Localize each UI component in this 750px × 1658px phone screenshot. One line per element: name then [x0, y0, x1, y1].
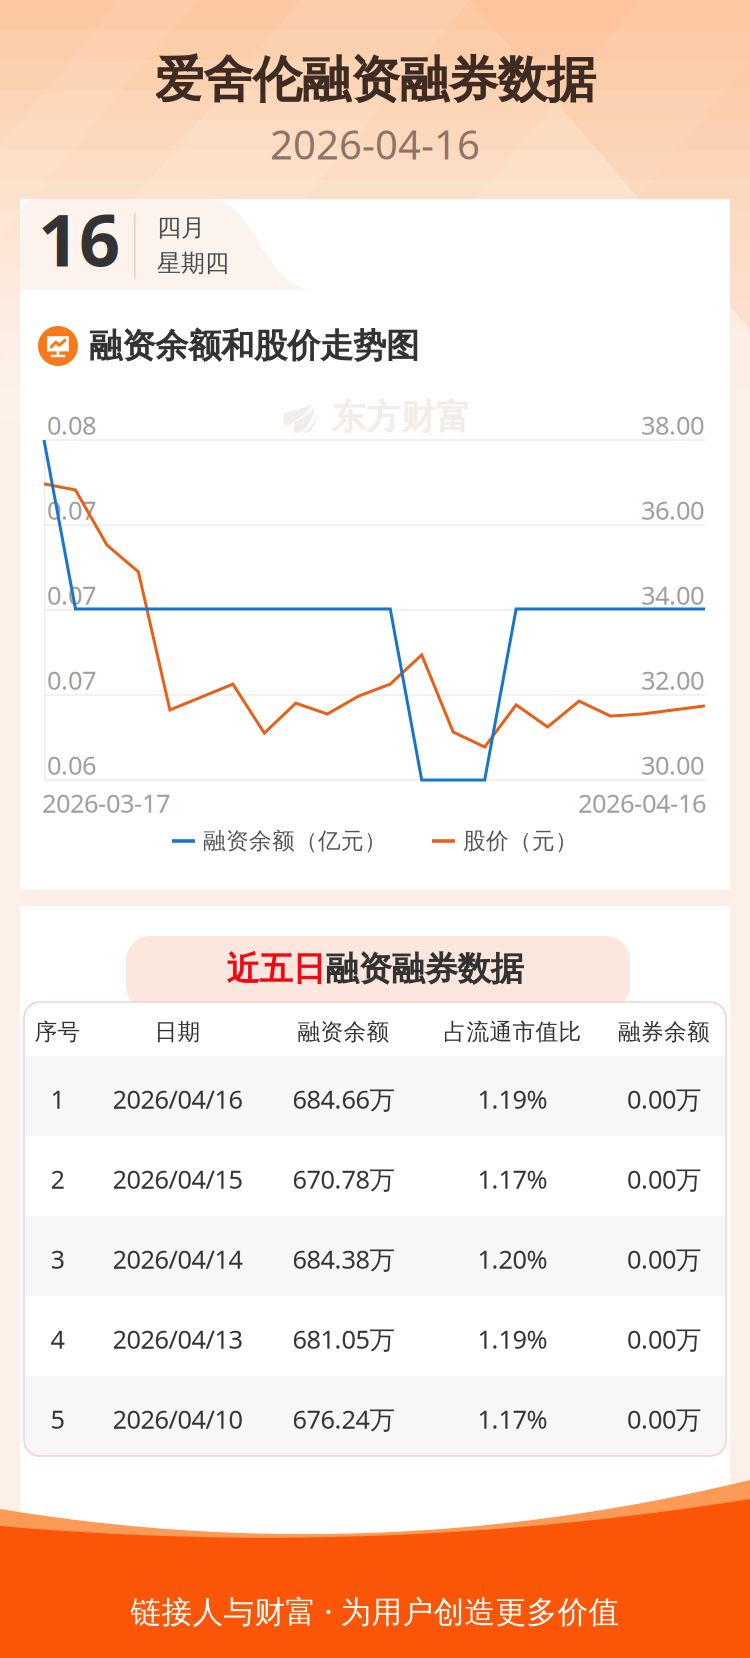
- staticText: 0.00万: [627, 1162, 701, 1196]
- staticText: 684.38万: [292, 1242, 394, 1276]
- staticText: 684.66万: [292, 1082, 394, 1116]
- staticText: 日期: [154, 1018, 200, 1046]
- staticText: 1.19%: [477, 1322, 547, 1356]
- staticText: 2: [50, 1162, 64, 1196]
- staticText: 16: [38, 191, 120, 286]
- staticText: 32.00: [641, 663, 704, 697]
- staticText: 4: [50, 1322, 64, 1356]
- staticText: 38.00: [641, 408, 704, 442]
- staticText: 2026/04/10: [112, 1402, 242, 1436]
- staticText: 2026/04/13: [112, 1322, 242, 1356]
- staticText: 1.20%: [477, 1242, 547, 1276]
- staticText: 链接人与财富 · 为用户创造更多价值: [130, 1591, 619, 1631]
- staticText: 0.00万: [627, 1082, 701, 1116]
- staticText: 0.08: [47, 408, 96, 442]
- staticText: 星期四: [157, 248, 229, 278]
- staticText: 融资余额和股价走势图: [89, 325, 419, 366]
- staticText: 占流通市值比: [443, 1018, 581, 1046]
- staticText: 0.00万: [627, 1402, 701, 1436]
- staticText: 1.19%: [477, 1082, 547, 1116]
- staticText: 东方财富: [331, 396, 471, 439]
- staticText: 0.07: [47, 493, 96, 527]
- staticText: 681.05万: [292, 1322, 394, 1356]
- staticText: 30.00: [641, 748, 704, 782]
- staticText: 1.17%: [477, 1402, 547, 1436]
- staticText: 676.24万: [292, 1402, 394, 1436]
- staticText: 0.07: [47, 663, 96, 697]
- staticText: 股价（元）: [463, 827, 578, 855]
- staticText: 1.17%: [477, 1162, 547, 1196]
- staticText: 36.00: [641, 493, 704, 527]
- staticText: 2026/04/14: [112, 1242, 242, 1276]
- staticText: 近五日: [226, 948, 325, 989]
- staticText: 序号: [34, 1018, 80, 1046]
- staticText: 670.78万: [292, 1162, 394, 1196]
- staticText: 1: [50, 1082, 64, 1116]
- staticText: 2026-04-16: [578, 786, 706, 820]
- staticText: 2026/04/15: [112, 1162, 242, 1196]
- staticText: 东方财富: [331, 1227, 471, 1270]
- staticText: 0.00万: [627, 1242, 701, 1276]
- staticText: 融资融券数据: [325, 948, 523, 989]
- staticText: 爱舍伦融资融券数据: [154, 50, 595, 110]
- staticText: 2026-04-16: [270, 117, 480, 170]
- staticText: 融资余额: [297, 1018, 389, 1046]
- staticText: 0.07: [47, 578, 96, 612]
- staticText: 3: [50, 1242, 64, 1276]
- staticText: 34.00: [641, 578, 704, 612]
- staticText: 0.00万: [627, 1322, 701, 1356]
- staticText: 融券余额: [618, 1018, 710, 1046]
- staticText: 2026/04/16: [112, 1082, 242, 1116]
- staticText: 融资余额（亿元）: [203, 827, 387, 855]
- staticText: 0.06: [47, 748, 96, 782]
- staticText: 四月: [157, 213, 205, 242]
- staticText: 2026-03-17: [42, 786, 170, 820]
- staticText: 5: [50, 1402, 64, 1436]
